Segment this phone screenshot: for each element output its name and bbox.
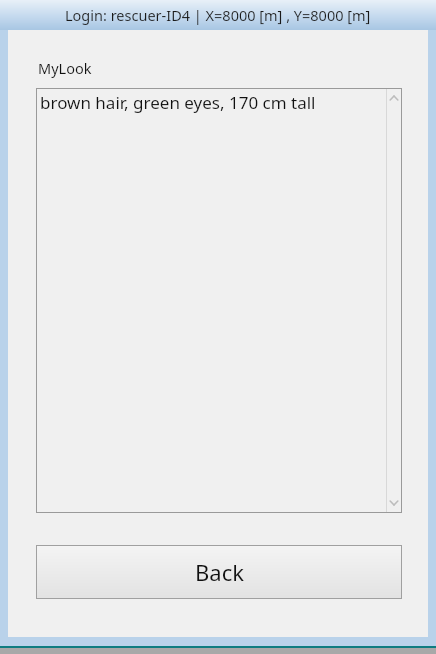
staticText: Back <box>195 557 244 587</box>
staticText: MyLook <box>38 58 92 78</box>
staticText: Login: rescuer-ID4 | X=8000 [m] , Y=8000… <box>65 5 371 25</box>
button[interactable]: Back <box>36 545 402 599</box>
staticText: brown hair, green eyes, 170 cm tall <box>40 91 316 114</box>
